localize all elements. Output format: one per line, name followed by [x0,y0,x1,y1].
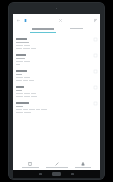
button[interactable]: Bookmark [13,67,100,83]
button[interactable]: Bookmark [13,83,100,99]
button[interactable] [65,26,87,34]
button[interactable]: Filter [22,17,28,23]
button[interactable]: Bookmark [94,38,97,41]
button[interactable]: Bookmark [13,35,100,51]
button[interactable]: Bookmark [94,86,97,89]
button[interactable]: Back [39,173,42,175]
button[interactable]: Create [44,161,70,169]
button[interactable]: Back [15,17,21,23]
button[interactable]: Bookmark [94,70,97,73]
button[interactable] [26,26,59,34]
button[interactable]: Close [57,17,63,23]
button[interactable]: Settings [70,161,96,169]
button[interactable]: Bookmark [94,102,97,105]
button[interactable]: Recents [71,173,74,175]
button[interactable]: Home [52,172,61,176]
button[interactable]: Bookmark [13,99,100,115]
button[interactable]: Library [17,161,43,169]
button[interactable]: Sort [92,17,98,23]
button[interactable]: Bookmark [13,51,100,67]
button[interactable]: Bookmark [94,54,97,57]
